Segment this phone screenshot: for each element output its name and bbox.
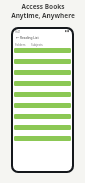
staticText: Access Books — [21, 2, 65, 11]
staticText: Anytime, Anywhere — [11, 11, 75, 20]
staticText: Subjects — [31, 43, 43, 47]
button[interactable] — [14, 81, 71, 86]
button[interactable] — [14, 59, 71, 64]
button[interactable] — [14, 103, 71, 108]
button[interactable]: Back — [15, 34, 70, 41]
button[interactable] — [14, 48, 71, 53]
button[interactable] — [14, 70, 71, 75]
other: Back — [15, 35, 20, 40]
button[interactable] — [14, 125, 71, 130]
staticText: Folders — [15, 43, 26, 47]
staticText: Reading List — [20, 36, 39, 40]
staticText: ← — [16, 35, 20, 40]
button[interactable] — [14, 92, 71, 97]
staticText: ▮▮▮ — [65, 30, 70, 33]
button[interactable] — [14, 136, 71, 141]
button[interactable] — [14, 114, 71, 119]
staticText: 9:41 — [15, 30, 21, 34]
